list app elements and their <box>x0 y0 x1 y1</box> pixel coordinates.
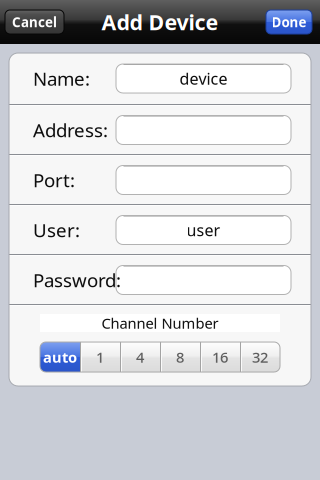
staticText: Done <box>271 13 306 31</box>
staticText: 16 <box>212 347 228 367</box>
staticText: auto <box>43 347 77 367</box>
staticText: user <box>186 219 220 241</box>
staticText: device <box>179 68 227 89</box>
staticText: Address: <box>33 118 108 142</box>
button[interactable]: 8 <box>160 342 200 372</box>
button[interactable]: 1 <box>80 342 120 372</box>
button[interactable]: 16 <box>200 342 240 372</box>
staticText: Port: <box>33 168 75 192</box>
staticText: Channel Number <box>101 313 218 333</box>
button[interactable]: device <box>9 53 311 106</box>
button[interactable] <box>9 156 311 206</box>
button[interactable] <box>9 106 311 156</box>
staticText: User: <box>33 218 80 242</box>
button[interactable]: Done <box>266 10 312 34</box>
staticText: Add Device <box>101 8 218 36</box>
button[interactable]: user <box>9 206 311 256</box>
button[interactable]: Cancel <box>5 10 64 34</box>
staticText: 4 <box>136 347 144 367</box>
staticText: 8 <box>176 347 184 367</box>
button[interactable]: 32 <box>240 342 280 372</box>
staticText: 32 <box>252 347 268 367</box>
staticText: Name: <box>33 66 90 91</box>
button[interactable]: 4 <box>120 342 160 372</box>
staticText: 1 <box>96 347 104 367</box>
button[interactable]: auto <box>40 342 80 372</box>
button[interactable] <box>9 256 311 306</box>
staticText: Password: <box>33 268 121 292</box>
staticText: Cancel <box>12 13 57 31</box>
